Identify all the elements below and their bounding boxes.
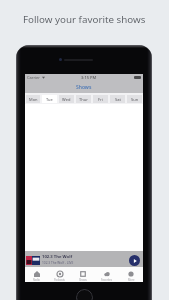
staticText: Wed — [62, 97, 71, 102]
staticText: Shows — [79, 278, 87, 282]
button[interactable]: Favorites — [95, 267, 119, 282]
button[interactable]: Play — [129, 255, 140, 266]
staticText: More — [128, 278, 135, 282]
button[interactable]: Wed — [59, 95, 74, 103]
button[interactable]: Podcasts — [48, 267, 71, 282]
staticText: Sat — [115, 97, 121, 102]
button[interactable]: Thur — [76, 95, 91, 103]
staticText: Fri — [98, 97, 103, 102]
button[interactable]: Tue — [42, 95, 57, 103]
button[interactable]: Mon — [26, 95, 40, 103]
staticText: Podcasts — [54, 278, 65, 282]
staticText: 102.3 The Wolf - LIVE — [42, 261, 74, 265]
staticText: Favorites — [101, 278, 113, 282]
staticText: 3:15 PM — [81, 75, 97, 80]
staticText: Mon — [29, 97, 38, 102]
button[interactable]: Radio — [25, 267, 48, 282]
staticText: 102.3 The Wolf — [42, 254, 73, 260]
staticText: Radio — [33, 278, 40, 282]
button[interactable]: Sun — [127, 95, 142, 103]
button[interactable]: Sat — [110, 95, 125, 103]
staticText: Thur — [79, 97, 88, 102]
staticText: Carrier — [27, 75, 41, 80]
button[interactable]: Fri — [93, 95, 108, 103]
staticText: Tue — [46, 97, 53, 102]
staticText: Follow your favorite shows — [23, 13, 146, 26]
button[interactable]: Shows — [71, 267, 95, 282]
staticText: Shows — [76, 84, 92, 91]
button[interactable]: More — [119, 267, 143, 282]
staticText: Sun — [131, 97, 139, 102]
